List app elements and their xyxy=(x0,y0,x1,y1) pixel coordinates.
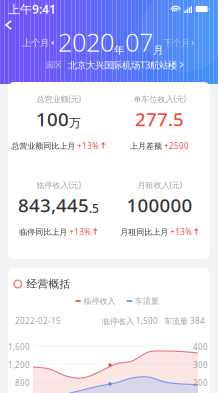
staticText: 月 xyxy=(153,44,164,57)
staticText: 277.5 xyxy=(135,107,184,131)
staticText: 1,600 xyxy=(8,342,30,352)
staticText: 万 xyxy=(69,116,81,130)
staticText: +13% xyxy=(170,227,192,237)
staticText: 北京大兴国际机场T3航站楼 xyxy=(68,59,177,71)
staticText: 年 xyxy=(114,44,125,57)
staticText: .5 xyxy=(89,200,99,216)
staticText: 临停收入 1,500 xyxy=(102,316,158,326)
button[interactable]: 返回 xyxy=(0,0,24,18)
staticText: 月租收入(元) xyxy=(137,180,181,190)
staticText: 车流量 384 xyxy=(164,316,205,326)
staticText: 园区 xyxy=(46,60,62,70)
staticText: 上月差额 xyxy=(130,141,162,151)
staticText: 100 xyxy=(193,392,208,393)
button[interactable]: 北京大兴国际机场T3航站楼 xyxy=(62,59,184,71)
staticText: 临停收入(元) xyxy=(36,180,80,190)
staticText: 200 xyxy=(193,378,208,388)
staticText: +2500 xyxy=(164,141,189,151)
staticText: +13% xyxy=(69,227,91,237)
staticText: 1,200 xyxy=(8,360,30,370)
staticText: 843,445 xyxy=(18,193,89,217)
staticText: 车流量 xyxy=(135,296,159,306)
staticText: 300 xyxy=(193,360,208,370)
staticText: 800 xyxy=(15,378,30,388)
staticText: 临停同比上月 xyxy=(19,227,67,237)
staticText: 月租同比上月 xyxy=(120,227,168,237)
staticText: 2020 xyxy=(58,25,114,59)
staticText: 上个月 xyxy=(22,37,49,49)
staticText: 上午9:41 xyxy=(8,1,56,17)
button[interactable]: 上个月 xyxy=(0,0,34,14)
staticText: 临停收入 xyxy=(83,296,115,306)
staticText: 100 xyxy=(36,107,69,131)
staticText: 经营概括 xyxy=(27,277,71,290)
button[interactable]: 下个月 xyxy=(0,0,34,14)
staticText: 100000 xyxy=(126,193,192,217)
staticText: 07 xyxy=(125,25,153,59)
staticText: 总营业额同比上月 xyxy=(11,141,75,151)
staticText: 下个月 xyxy=(163,37,190,49)
staticText: 总营业额(元) xyxy=(36,94,80,104)
staticText: 单车位收入(元) xyxy=(133,94,185,104)
staticText: +13% xyxy=(77,141,99,151)
staticText: 400 xyxy=(193,342,208,352)
staticText: 2022-02-15 xyxy=(15,316,61,326)
